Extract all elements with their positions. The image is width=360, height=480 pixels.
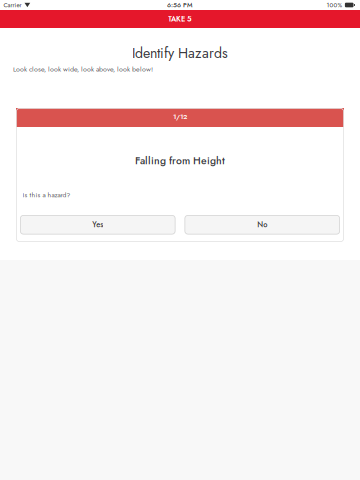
- staticText: Falling from Height: [135, 153, 225, 168]
- staticText: Identify Hazards: [132, 43, 228, 63]
- staticText: 100%: [326, 1, 342, 9]
- staticText: Look close, look wide, look above, look …: [13, 64, 153, 74]
- staticText: Is this a hazard?: [22, 190, 70, 200]
- button[interactable]: Yes: [20, 215, 175, 234]
- staticText: Carrier: [3, 1, 21, 9]
- staticText: Yes: [92, 219, 103, 230]
- staticText: TAKE 5: [168, 14, 192, 24]
- staticText: 1/12: [173, 111, 187, 121]
- staticText: No: [257, 219, 267, 230]
- button[interactable]: No: [184, 215, 340, 234]
- staticText: 6:56 PM: [167, 0, 193, 10]
